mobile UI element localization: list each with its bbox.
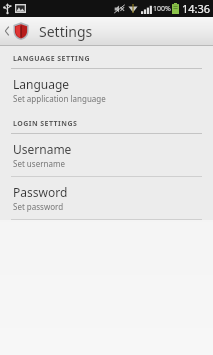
staticText: Language	[13, 76, 70, 92]
staticText: Set username	[13, 158, 65, 169]
staticText: Settings	[39, 22, 93, 41]
button[interactable]: Navigate up	[0, 19, 32, 43]
staticText: LANGUAGE SETTING	[13, 54, 90, 64]
staticText: Password	[13, 184, 68, 200]
button[interactable]: Username	[0, 134, 213, 176]
staticText: Username	[13, 141, 72, 157]
staticText: 100%	[153, 4, 171, 14]
staticText: 14:36	[182, 1, 211, 16]
button[interactable]: Language	[0, 69, 213, 111]
button[interactable]: Password	[0, 177, 213, 219]
staticText: Set password	[13, 201, 64, 212]
staticText: LOGIN SETTINGS	[13, 119, 78, 129]
staticText: Set application language	[13, 93, 106, 104]
